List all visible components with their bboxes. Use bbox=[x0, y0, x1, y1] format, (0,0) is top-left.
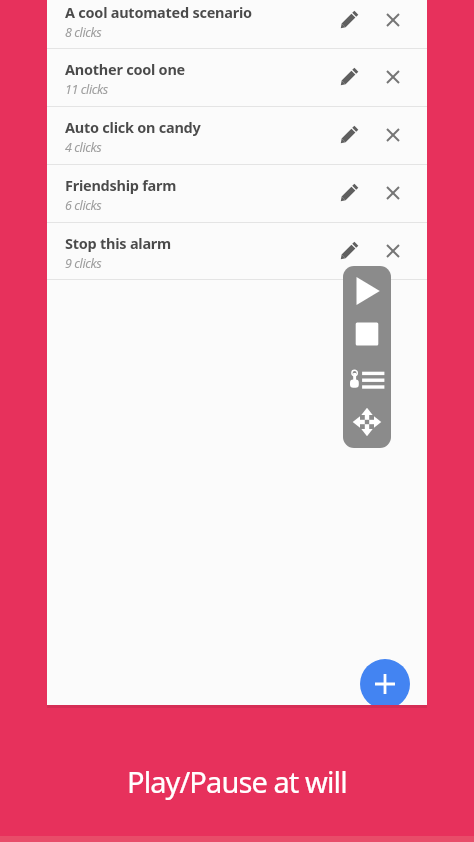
button[interactable] bbox=[343, 268, 391, 314]
button[interactable]: A cool automated scenario bbox=[47, 0, 427, 49]
button[interactable] bbox=[343, 356, 391, 402]
button[interactable] bbox=[329, 57, 369, 97]
button[interactable] bbox=[329, 115, 369, 155]
button[interactable] bbox=[373, 57, 413, 97]
button[interactable] bbox=[373, 0, 413, 40]
staticText: 11 clicks bbox=[65, 81, 108, 98]
button[interactable] bbox=[373, 173, 413, 213]
staticText: Play/Pause at will bbox=[127, 762, 347, 801]
button[interactable] bbox=[329, 231, 369, 271]
button[interactable] bbox=[343, 311, 391, 357]
button[interactable] bbox=[329, 173, 369, 213]
staticText: 6 clicks bbox=[65, 197, 102, 214]
button[interactable]: Auto click on candy bbox=[47, 106, 427, 164]
button[interactable] bbox=[360, 659, 410, 705]
button[interactable]: Friendship farm bbox=[47, 164, 427, 222]
staticText: Another cool one bbox=[65, 59, 185, 79]
button[interactable] bbox=[343, 401, 391, 443]
staticText: Auto click on candy bbox=[65, 117, 201, 137]
button[interactable]: Another cool one bbox=[47, 48, 427, 106]
staticText: Friendship farm bbox=[65, 175, 177, 195]
button[interactable] bbox=[373, 231, 413, 271]
staticText: A cool automated scenario bbox=[65, 2, 252, 22]
staticText: Stop this alarm bbox=[65, 233, 171, 253]
staticText: 9 clicks bbox=[65, 255, 102, 272]
staticText: 4 clicks bbox=[65, 139, 102, 156]
button[interactable]: Stop this alarm bbox=[47, 222, 427, 280]
button[interactable] bbox=[329, 0, 369, 40]
button[interactable] bbox=[373, 115, 413, 155]
staticText: 8 clicks bbox=[65, 24, 102, 41]
